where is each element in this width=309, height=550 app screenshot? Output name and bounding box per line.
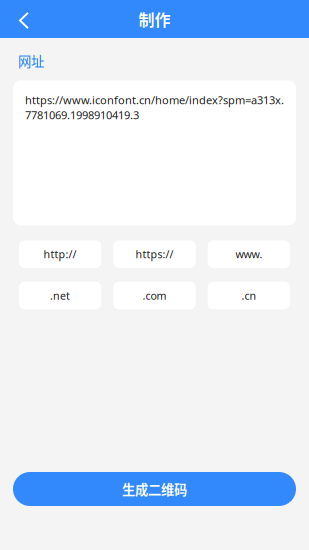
- button[interactable]: https://: [113, 240, 196, 268]
- staticText: 制作: [138, 7, 170, 31]
- staticText: .net: [50, 288, 70, 303]
- button[interactable]: www.: [208, 240, 290, 268]
- staticText: 生成二维码: [122, 479, 187, 499]
- button[interactable]: Back: [0, 0, 46, 38]
- staticText: .com: [142, 288, 166, 303]
- staticText: https://www.iconfont.cn/home/index?spm=a…: [25, 92, 284, 122]
- button[interactable]: .net: [19, 282, 101, 309]
- button[interactable]: .cn: [208, 282, 290, 309]
- staticText: .cn: [241, 288, 256, 303]
- staticText: www.: [235, 247, 262, 261]
- button[interactable]: .com: [113, 282, 196, 309]
- staticText: https://: [135, 247, 173, 261]
- staticText: http://: [44, 247, 77, 261]
- staticText: 网址: [18, 51, 44, 70]
- button[interactable]: 生成二维码: [13, 472, 296, 506]
- button[interactable]: http://: [19, 240, 101, 268]
